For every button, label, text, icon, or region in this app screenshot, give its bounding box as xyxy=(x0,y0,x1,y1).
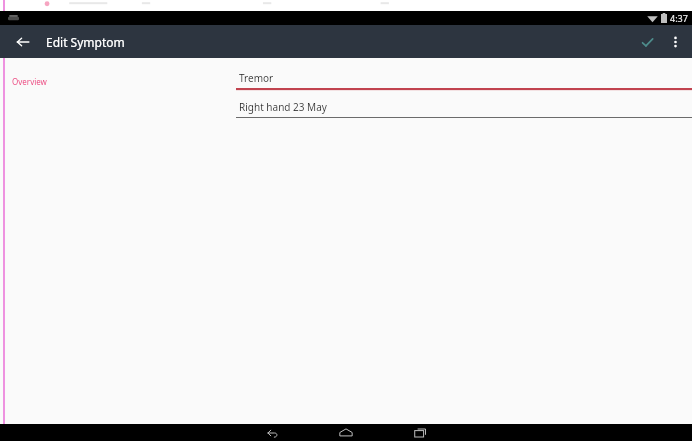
button[interactable]: More options xyxy=(662,29,688,55)
button[interactable]: Tremor xyxy=(236,71,692,91)
button[interactable]: Save xyxy=(632,27,662,57)
staticText: Tremor xyxy=(239,71,274,85)
staticText: Overview xyxy=(12,76,47,87)
button[interactable]: Navigate up xyxy=(8,27,38,57)
button[interactable]: Recent apps xyxy=(398,424,442,441)
button[interactable]: Right hand 23 May xyxy=(236,100,692,118)
button[interactable]: Home xyxy=(324,424,368,441)
button[interactable]: Overview xyxy=(10,74,49,89)
staticText: Right hand 23 May xyxy=(239,100,327,114)
staticText: Edit Symptom xyxy=(46,34,125,50)
button[interactable]: Back xyxy=(250,424,294,441)
staticText: 4:37 xyxy=(670,12,688,24)
